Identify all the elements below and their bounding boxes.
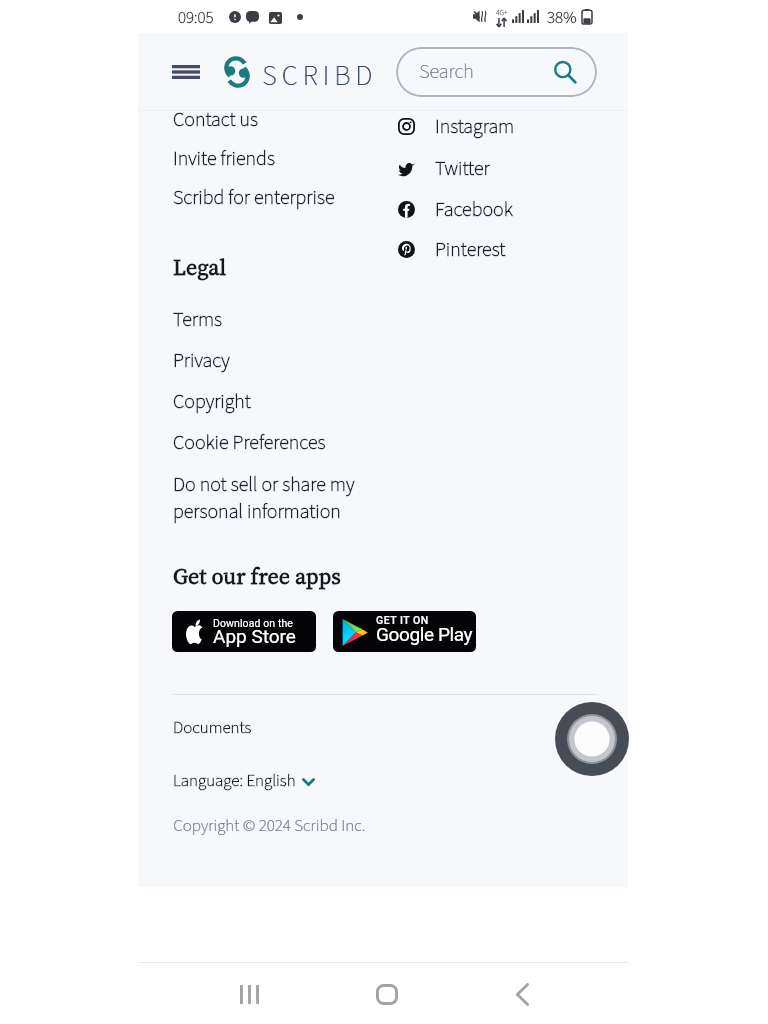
staticText: Terms [173,306,223,334]
staticText: Get our free apps [173,561,341,591]
button[interactable]: Screen recorder overlay button [555,702,629,776]
staticText: 09:05 [178,6,214,30]
staticText: Instagram [435,113,515,139]
staticText: Download on the [213,617,294,629]
staticText: Google Play [376,623,473,645]
staticText: Invite friends [173,145,275,173]
staticText: App Store [213,625,296,647]
button[interactable]: Pinterest [398,236,506,262]
staticText: Pinterest [435,236,506,262]
button[interactable]: Terms [173,306,223,334]
button[interactable]: Recent apps [221,966,277,1022]
staticText: 38% [547,6,577,30]
staticText: GET IT ON [376,614,429,626]
staticText: Documents [173,716,252,740]
button[interactable]: Scribd for enterprise [173,184,335,212]
button[interactable]: Scribd home [224,56,250,88]
staticText: Copyright © 2024 Scribd Inc. [173,814,366,838]
button[interactable]: Get it on Google Play [333,611,476,652]
button[interactable]: Back [494,966,550,1022]
staticText: Legal [173,252,227,282]
staticText: Privacy [173,347,230,375]
staticText: Contact us [173,106,258,134]
button[interactable]: Copyright [173,388,251,416]
button[interactable]: Privacy [173,347,230,375]
button[interactable]: Download on the App Store [172,611,316,652]
button[interactable]: Twitter [398,155,490,181]
staticText: 4G+ [496,7,508,18]
staticText: Cookie Preferences [173,429,326,457]
button[interactable]: Open navigation menu [163,56,208,88]
button[interactable]: Invite friends [173,145,275,173]
button[interactable]: Documents [173,716,252,740]
button[interactable]: Search [396,47,597,97]
staticText: Scribd for enterprise [173,184,335,212]
button[interactable]: Instagram [398,113,515,139]
button[interactable]: Do not sell or share my personal informa… [173,471,355,526]
staticText: Facebook [435,196,513,222]
button[interactable]: Cookie Preferences [173,429,326,457]
staticText: Search [419,58,474,86]
staticText: Do not sell or share my personal informa… [173,471,355,526]
button[interactable]: SCRIBD [262,56,378,96]
staticText: Language: English [173,769,296,793]
button[interactable]: Home [358,966,414,1022]
button[interactable]: Contact us [173,106,258,134]
staticText: Twitter [435,155,490,181]
button[interactable]: Language: English [173,769,315,793]
button[interactable]: Facebook [398,196,513,222]
staticText: Copyright [173,388,251,416]
